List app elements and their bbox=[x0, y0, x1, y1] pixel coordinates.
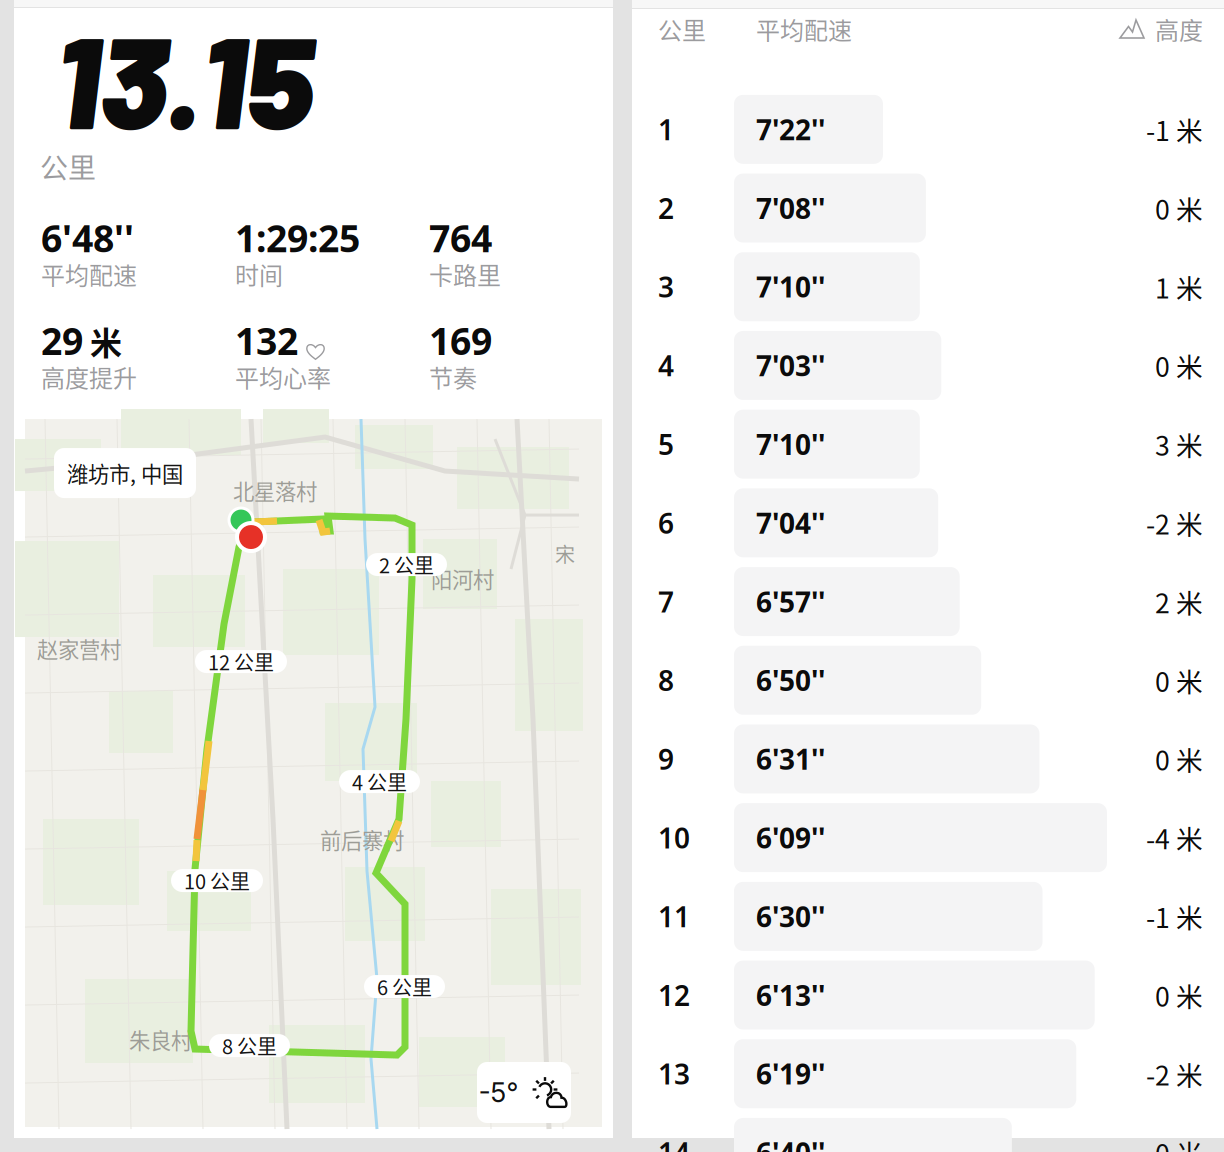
staticText: 11 bbox=[658, 898, 690, 935]
button[interactable]: 5 bbox=[632, 405, 1224, 483]
staticText: 0 米 bbox=[1155, 976, 1203, 1014]
staticText: 7'04'' bbox=[756, 504, 825, 541]
staticText: 6'40'' bbox=[756, 1134, 825, 1152]
staticText: 0 米 bbox=[1155, 346, 1203, 385]
staticText: 宋 bbox=[555, 539, 575, 568]
staticText: 6'48'' bbox=[41, 213, 134, 263]
button[interactable]: 8 bbox=[632, 641, 1224, 720]
staticText: 7'22'' bbox=[756, 111, 825, 148]
staticText: 节奏 bbox=[429, 359, 477, 394]
button[interactable]: 12 bbox=[632, 956, 1224, 1034]
staticText: 朱良村 bbox=[129, 1024, 192, 1055]
staticText: -2 米 bbox=[1146, 503, 1203, 542]
staticText: 平均配速 bbox=[41, 256, 137, 291]
staticText: 7'10'' bbox=[756, 268, 825, 305]
staticText: 阳河村 bbox=[431, 563, 494, 594]
staticText: 米 bbox=[83, 318, 122, 364]
staticText: -1 米 bbox=[1146, 110, 1203, 149]
staticText: 14 bbox=[658, 1134, 690, 1152]
staticText: 2 公里 bbox=[379, 550, 434, 579]
staticText: 7'03'' bbox=[756, 347, 825, 384]
button[interactable]: 4 bbox=[632, 326, 1224, 405]
button[interactable]: 14 bbox=[632, 1113, 1224, 1152]
staticText: 0 米 bbox=[1155, 189, 1203, 227]
staticText: 10 公里 bbox=[184, 866, 250, 895]
staticText: 12 bbox=[658, 976, 690, 1014]
staticText: 6'09'' bbox=[756, 819, 825, 856]
staticText: 5 bbox=[658, 426, 674, 463]
staticText: 潍坊市, 中国 bbox=[67, 458, 183, 488]
staticText: 赵家营村 bbox=[37, 633, 121, 664]
staticText: 6'57'' bbox=[756, 583, 825, 620]
staticText: -1 米 bbox=[1146, 897, 1203, 936]
staticText: 0 米 bbox=[1155, 661, 1203, 699]
staticText: 公里 bbox=[40, 146, 96, 186]
staticText: 1 bbox=[658, 111, 674, 148]
staticText: 2 bbox=[658, 189, 674, 227]
staticText: 1:29:25 bbox=[235, 213, 360, 263]
staticText: 平均心率 bbox=[235, 359, 331, 394]
staticText: -2 米 bbox=[1146, 1054, 1203, 1093]
staticText: 高度 bbox=[1155, 12, 1203, 46]
staticText: 平均配速 bbox=[756, 12, 852, 46]
staticText: 13 bbox=[658, 1055, 690, 1092]
staticText: 7'10'' bbox=[756, 426, 825, 463]
staticText: 7'08'' bbox=[756, 189, 825, 227]
button[interactable]: 9 bbox=[632, 720, 1224, 798]
button[interactable]: 13 bbox=[632, 1034, 1224, 1113]
staticText: 6'19'' bbox=[756, 1055, 825, 1092]
button[interactable]: 2 bbox=[632, 169, 1224, 247]
staticText: 7 bbox=[658, 583, 674, 620]
staticText: 公里 bbox=[658, 12, 706, 46]
staticText: 169 bbox=[429, 316, 492, 365]
staticText: 2 米 bbox=[1155, 582, 1203, 621]
staticText: 前后寨村 bbox=[320, 824, 404, 855]
staticText: 1 米 bbox=[1155, 267, 1203, 306]
staticText: 8 bbox=[658, 662, 674, 699]
button[interactable]: 1 bbox=[632, 90, 1224, 169]
staticText: 4 bbox=[658, 347, 674, 384]
staticText: 3 米 bbox=[1155, 425, 1203, 463]
staticText: 0 米 bbox=[1155, 740, 1203, 778]
staticText: 8 公里 bbox=[222, 1031, 277, 1060]
staticText: -5° bbox=[478, 1076, 518, 1109]
staticText: 6'50'' bbox=[756, 662, 825, 699]
staticText: 6'31'' bbox=[756, 740, 825, 778]
staticText: 12 公里 bbox=[208, 647, 274, 676]
staticText: 0 米 bbox=[1155, 1133, 1203, 1152]
staticText: 132 bbox=[235, 316, 298, 365]
staticText: 3 bbox=[658, 268, 674, 305]
button[interactable]: 6 bbox=[632, 483, 1224, 562]
staticText: -4 米 bbox=[1146, 818, 1203, 857]
staticText: 北星落村 bbox=[233, 475, 317, 506]
button[interactable]: 10 bbox=[632, 798, 1224, 877]
staticText: 4 公里 bbox=[352, 767, 407, 796]
staticText: 10 bbox=[658, 819, 690, 856]
staticText: 29 bbox=[41, 316, 83, 365]
staticText: 764 bbox=[429, 213, 492, 263]
staticText: 时间 bbox=[235, 256, 283, 291]
staticText: 13.15 bbox=[55, 1, 314, 155]
staticText: 6'13'' bbox=[756, 976, 825, 1014]
staticText: 6'30'' bbox=[756, 898, 825, 935]
button[interactable]: 7 bbox=[632, 562, 1224, 641]
button[interactable]: 11 bbox=[632, 877, 1224, 956]
staticText: 卡路里 bbox=[429, 256, 501, 291]
staticText: 9 bbox=[658, 740, 674, 778]
staticText: 6 公里 bbox=[377, 972, 432, 1001]
staticText: 高度提升 bbox=[41, 359, 137, 394]
button[interactable]: 3 bbox=[632, 247, 1224, 326]
staticText: 6 bbox=[658, 504, 674, 541]
